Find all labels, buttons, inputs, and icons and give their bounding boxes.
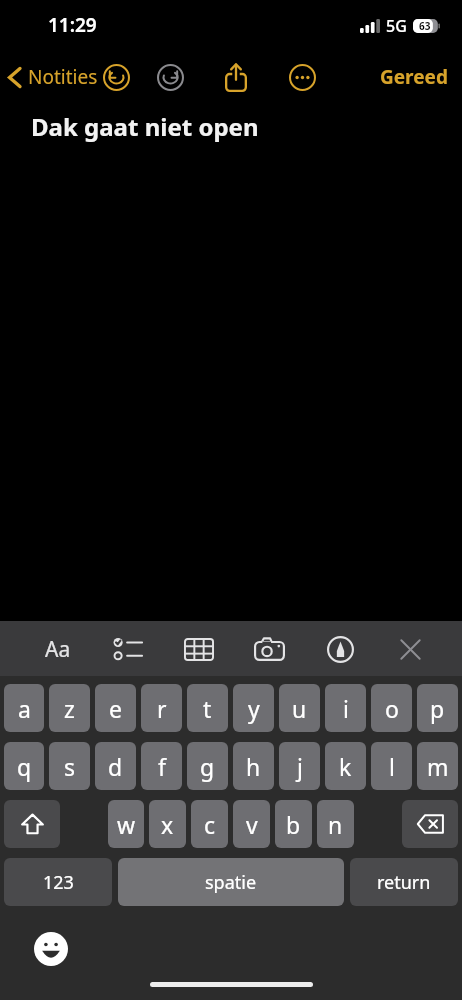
button[interactable]: Checklist [106, 627, 150, 671]
button[interactable]: spatie [118, 858, 344, 906]
button[interactable]: s [49, 742, 90, 790]
button[interactable]: k [325, 742, 366, 790]
staticText: x [161, 809, 174, 840]
button[interactable]: Shift [4, 800, 60, 848]
button[interactable]: b [275, 800, 312, 848]
staticText: 5G [386, 15, 407, 37]
staticText: g [200, 751, 215, 782]
button[interactable]: Text format [36, 627, 80, 671]
staticText: c [204, 809, 216, 840]
button[interactable]: x [149, 800, 186, 848]
button[interactable]: Camera [247, 627, 291, 671]
staticText: o [385, 693, 399, 724]
button[interactable]: Backspace [402, 800, 458, 848]
staticText: q [17, 751, 32, 782]
staticText: f [158, 751, 166, 782]
staticText: 63 [419, 19, 431, 33]
staticText: 11:29 [48, 12, 97, 38]
button[interactable]: return [350, 858, 458, 906]
staticText: e [109, 693, 122, 724]
button[interactable]: l [371, 742, 412, 790]
button[interactable]: i [325, 684, 366, 732]
staticText: u [292, 693, 307, 724]
staticText: v [246, 809, 258, 840]
button[interactable]: 123 [4, 858, 112, 906]
button[interactable]: Gereed [366, 58, 462, 96]
button[interactable]: y [233, 684, 274, 732]
button[interactable]: w [108, 800, 144, 848]
button[interactable]: Table [177, 627, 221, 671]
staticText: z [64, 693, 75, 724]
button[interactable]: t [187, 684, 228, 732]
button[interactable]: Share [213, 54, 259, 100]
staticText: t [203, 693, 212, 724]
button[interactable]: d [95, 742, 136, 790]
button[interactable]: p [417, 684, 458, 732]
button[interactable]: r [141, 684, 182, 732]
button[interactable]: j [279, 742, 320, 790]
staticText: h [246, 751, 261, 782]
staticText: m [427, 751, 449, 782]
button[interactable]: Emoji [34, 932, 68, 966]
button[interactable]: Undo [93, 54, 139, 100]
button[interactable]: a [4, 684, 44, 732]
staticText: j [297, 751, 303, 782]
button[interactable]: o [371, 684, 412, 732]
button[interactable]: q [4, 742, 44, 790]
button[interactable]: g [187, 742, 228, 790]
button[interactable]: c [191, 800, 228, 848]
button[interactable]: Close keyboard [388, 627, 432, 671]
button[interactable]: z [49, 684, 90, 732]
button[interactable]: e [95, 684, 136, 732]
staticText: Dak gaat niet open [31, 110, 259, 143]
staticText: Gereed [380, 64, 448, 90]
staticText: b [286, 809, 301, 840]
staticText: w [117, 809, 136, 840]
staticText: a [18, 693, 31, 724]
button[interactable]: u [279, 684, 320, 732]
staticText: y [248, 693, 260, 724]
staticText: Notities [28, 64, 98, 90]
button[interactable]: More [279, 54, 325, 100]
staticText: s [64, 751, 76, 782]
button[interactable]: v [233, 800, 270, 848]
staticText: r [157, 693, 167, 724]
button[interactable]: h [233, 742, 274, 790]
button[interactable]: Markup [318, 627, 362, 671]
button[interactable]: n [317, 800, 354, 848]
button[interactable]: Notities [0, 58, 106, 96]
staticText: return [377, 870, 431, 895]
staticText: d [108, 751, 123, 782]
staticText: 123 [43, 870, 74, 895]
staticText: n [328, 809, 343, 840]
staticText: Aa [45, 635, 71, 664]
staticText: k [339, 751, 352, 782]
button[interactable]: Redo [147, 54, 193, 100]
button[interactable]: f [141, 742, 182, 790]
staticText: l [389, 751, 395, 782]
staticText: spatie [205, 870, 257, 895]
staticText: i [343, 693, 349, 724]
button[interactable]: m [417, 742, 458, 790]
staticText: p [430, 693, 445, 724]
